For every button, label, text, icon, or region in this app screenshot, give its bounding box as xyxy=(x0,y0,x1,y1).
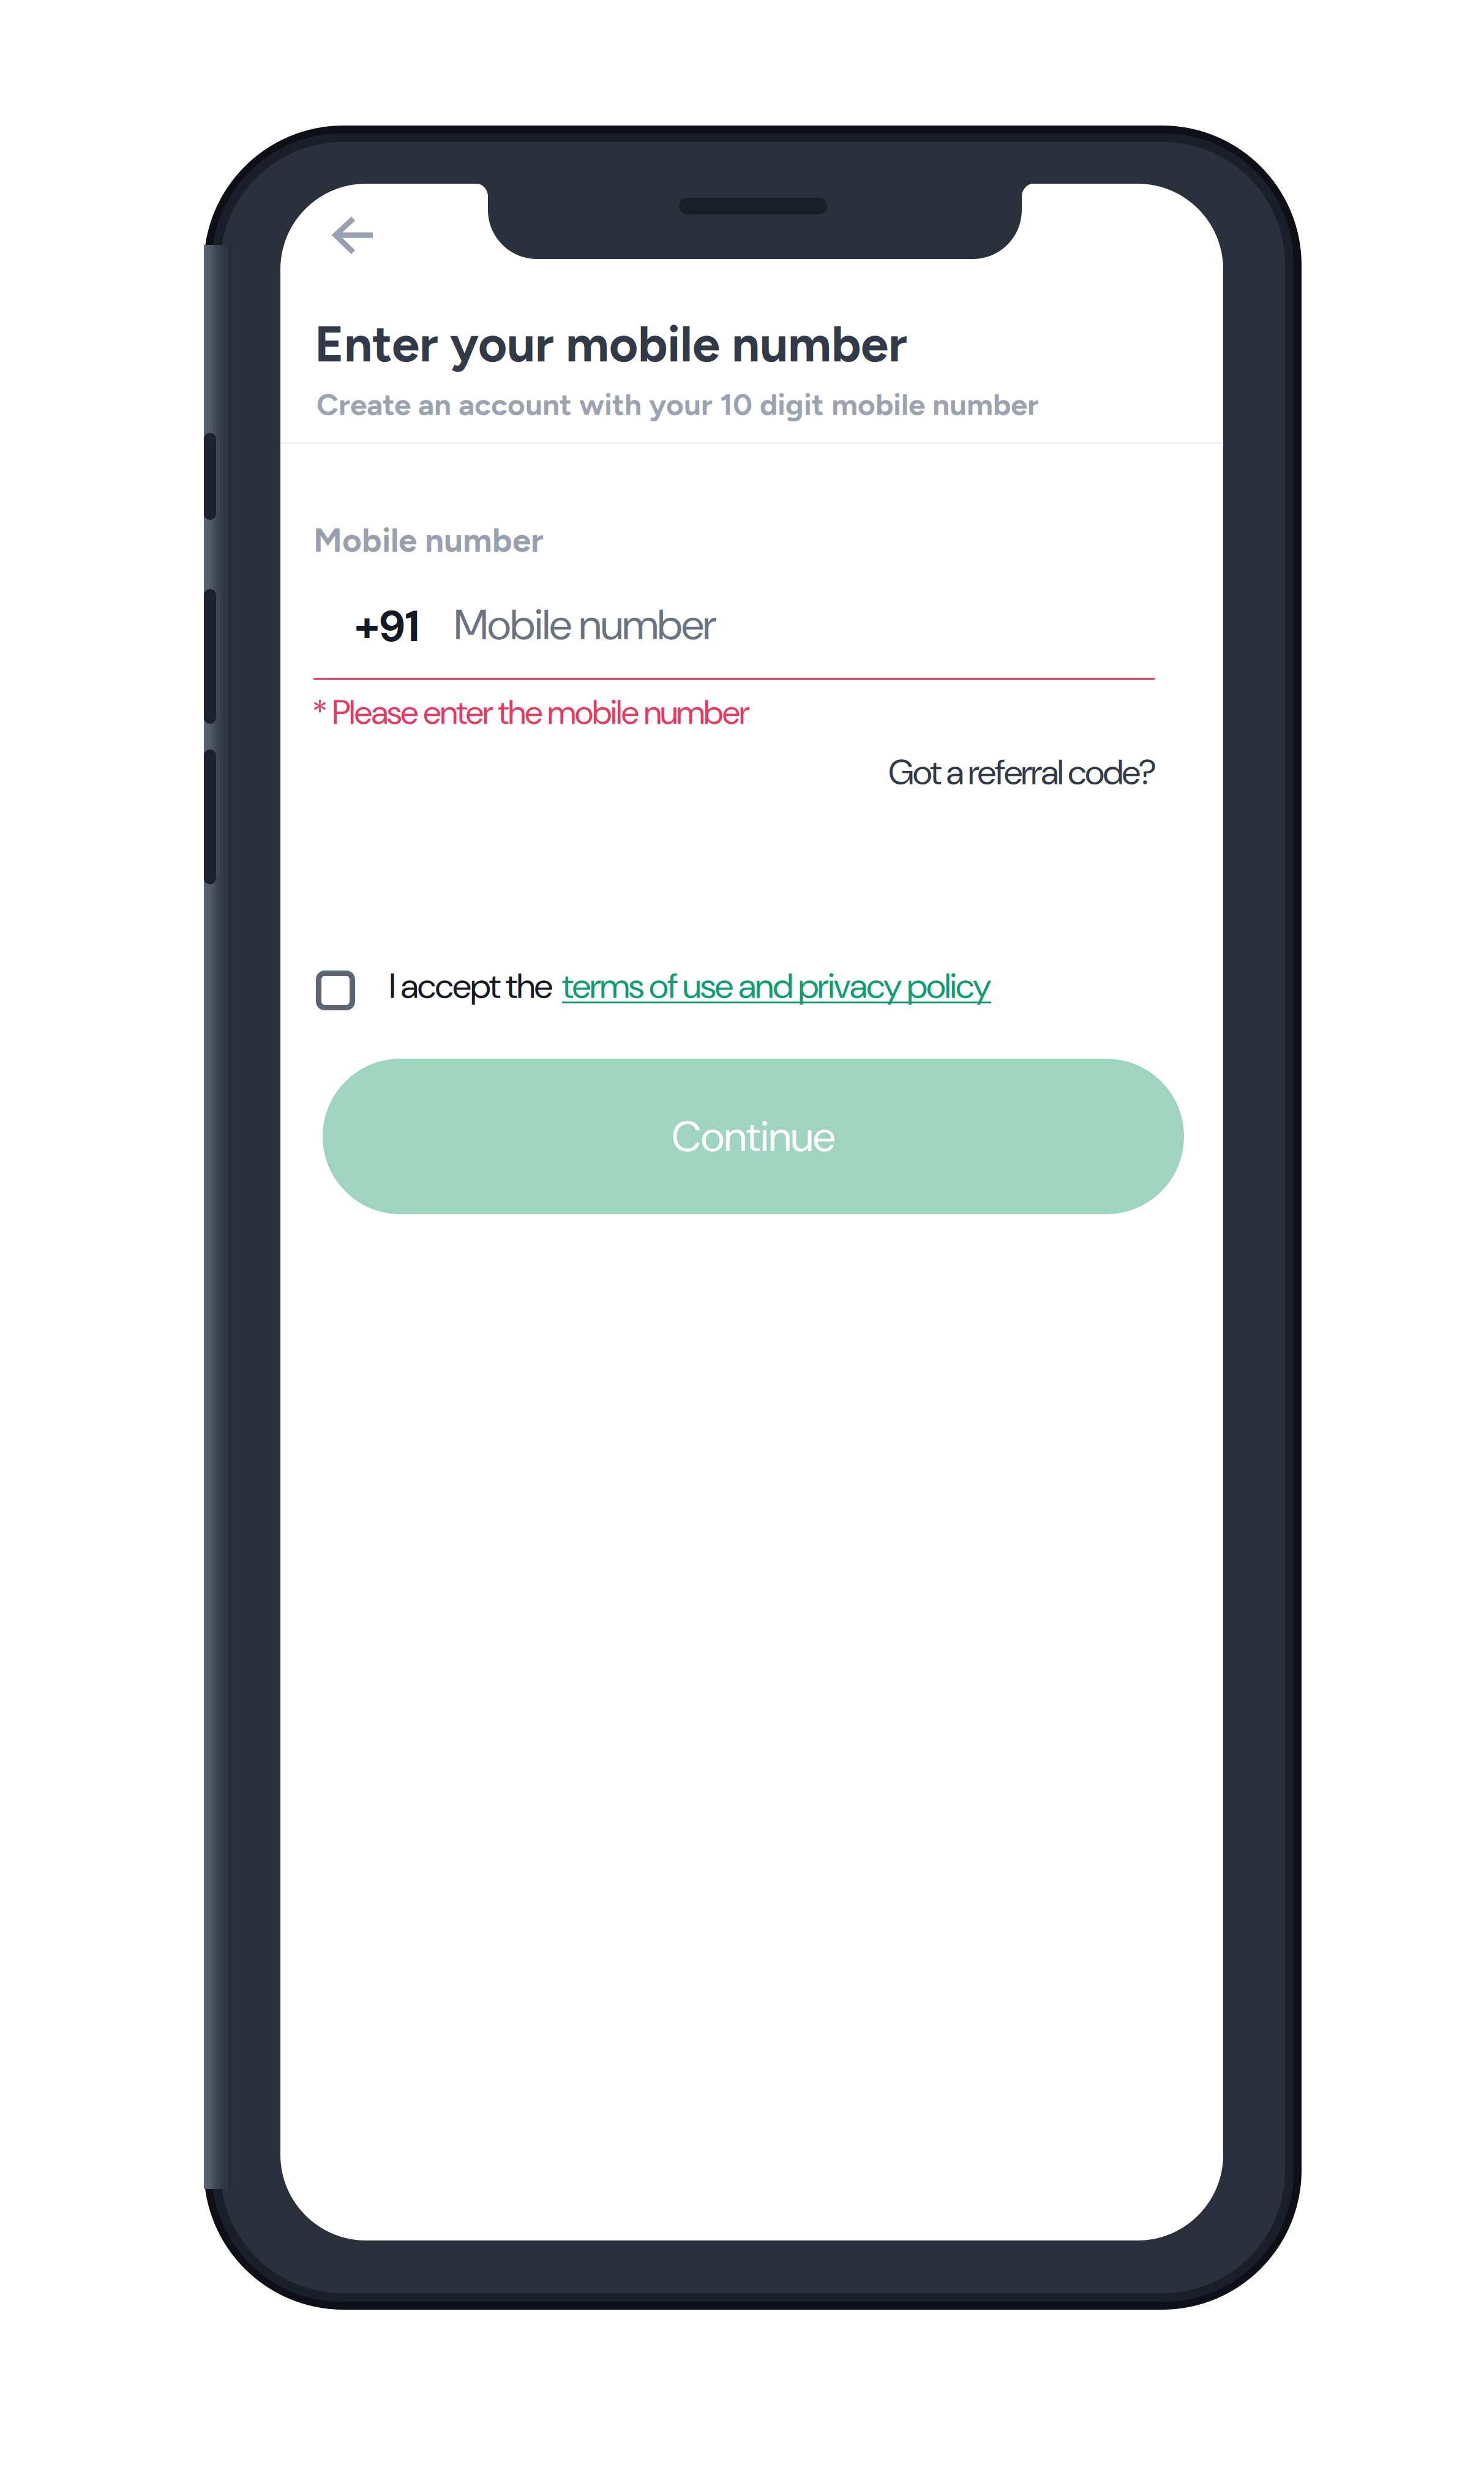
button[interactable]: Continue xyxy=(323,1059,1184,1214)
button[interactable]: I accept the terms of use and privacy po… xyxy=(316,971,355,1010)
staticText: Got a referral code? xyxy=(888,749,1156,795)
staticText: +91 xyxy=(354,598,419,655)
staticText: terms of use and privacy policy xyxy=(562,963,991,1009)
staticText: Continue xyxy=(672,1109,835,1164)
button[interactable]: terms of use and privacy policy xyxy=(562,963,991,1009)
button[interactable]: Got a referral code? xyxy=(888,749,1156,795)
button[interactable]: Back xyxy=(317,198,396,272)
staticText: * Please enter the mobile number xyxy=(312,691,750,734)
staticText: I accept the xyxy=(389,963,553,1009)
staticText: Enter your mobile number xyxy=(315,314,907,374)
staticText: Create an account with your 10 digit mob… xyxy=(317,386,1039,423)
staticText: Mobile number xyxy=(313,520,544,560)
staticText: Mobile number xyxy=(454,597,717,652)
